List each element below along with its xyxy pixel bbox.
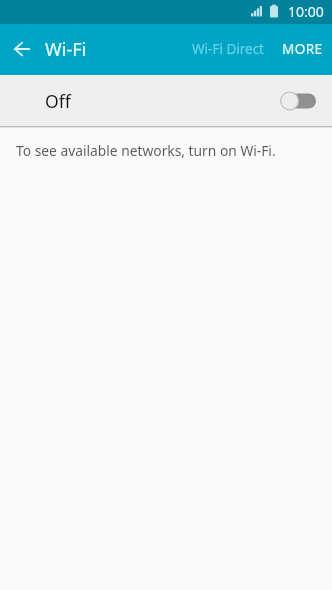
- button[interactable]: Navigate up: [0, 28, 44, 72]
- staticText: Wi-Fi: [45, 37, 87, 62]
- staticText: Wi-Fi Direct: [192, 40, 264, 58]
- staticText: To see available networks, turn on Wi-Fi…: [16, 141, 276, 160]
- button[interactable]: MORE: [268, 31, 332, 69]
- button[interactable]: Wi-Fi switch, off: [281, 91, 316, 111]
- button[interactable]: Wi-Fi Direct: [180, 31, 268, 69]
- staticText: 10:00: [288, 2, 324, 21]
- button[interactable]: Off: [0, 75, 332, 126]
- staticText: Off: [45, 89, 71, 113]
- staticText: MORE: [282, 39, 323, 58]
